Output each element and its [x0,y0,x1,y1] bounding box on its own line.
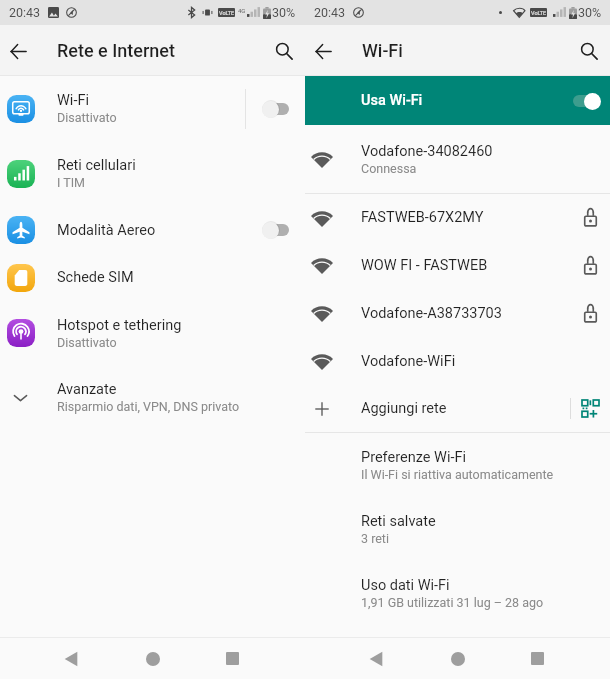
button[interactable]: Vodafone-34082460 [305,125,610,193]
button[interactable]: Back [50,638,91,679]
button[interactable]: Scan QR code [571,385,610,432]
button[interactable]: Avanzate [0,365,305,429]
staticText: Reti salvate [361,513,436,530]
button[interactable]: Vodafone-WiFi [305,337,610,385]
staticText: Modalità Aereo [57,222,156,239]
button[interactable]: Home [132,638,173,679]
staticText: VoLTE [219,10,235,16]
button[interactable]: Modalità Aereo [0,206,305,254]
button[interactable]: Preferenze Wi-Fi [305,433,610,497]
button[interactable]: Toggle Wi-Fi [246,76,305,141]
staticText: Risparmio dati, VPN, DNS privato [57,399,240,414]
staticText: Vodafone-A38733703 [361,305,502,322]
staticText: Disattivato [57,335,117,350]
staticText: Il Wi-Fi si riattiva automaticamente [361,467,554,482]
button[interactable]: Reti cellulari [0,141,305,206]
button[interactable]: Back [306,34,340,68]
staticText: 3 reti [361,531,390,546]
staticText: Aggiungi rete [361,400,570,417]
button[interactable]: Back [1,34,35,68]
staticText: 4G [238,7,246,14]
button[interactable]: Search [572,34,606,68]
button[interactable]: Schede SIM [0,254,305,301]
staticText: Schede SIM [57,269,134,286]
staticText: 1,91 GB utilizzati 31 lug – 28 ago [361,595,544,610]
button[interactable]: Vodafone-A38733703 [305,289,610,337]
button[interactable]: Toggle Modalità Aereo [246,206,305,254]
staticText: I TIM [57,175,86,190]
staticText: Hotspot e tethering [57,317,182,334]
button[interactable]: Reti salvate [305,497,610,561]
button[interactable]: Recent apps [212,638,253,679]
staticText: Wi-Fi [362,40,403,61]
staticText: Vodafone-34082460 [361,143,493,160]
staticText: 20:43 [9,5,41,20]
button[interactable]: Usa Wi-Fi [305,76,610,125]
button[interactable]: Search [267,34,301,68]
button[interactable]: Uso dati Wi-Fi [305,561,610,625]
button[interactable]: WOW FI - FASTWEB [305,241,610,289]
button[interactable]: Back [355,638,396,679]
staticText: Rete e Internet [57,40,175,61]
staticText: Usa Wi-Fi [361,92,563,109]
button[interactable]: Hotspot e tethering [0,301,305,365]
staticText: 20:43 [314,5,346,20]
staticText: Preferenze Wi-Fi [361,449,466,466]
button[interactable]: Aggiungi rete [305,385,610,432]
staticText: 30% [272,5,296,20]
button[interactable]: Recent apps [517,638,558,679]
staticText: WOW FI - FASTWEB [361,257,488,274]
button[interactable]: Wi-Fi [0,76,305,141]
staticText: 30% [578,5,602,20]
staticText: VoLTE [531,10,547,16]
staticText: Uso dati Wi-Fi [361,577,450,594]
staticText: Vodafone-WiFi [361,353,456,370]
button[interactable]: Toggle Wi-Fi [563,76,610,125]
staticText: Connessa [361,161,417,176]
staticText: Wi-Fi [57,92,89,109]
staticText: Reti cellulari [57,157,136,174]
staticText: Avanzate [57,381,117,398]
staticText: Disattivato [57,110,117,125]
button[interactable]: Home [437,638,478,679]
button[interactable]: FASTWEB-67X2MY [305,194,610,241]
staticText: FASTWEB-67X2MY [361,209,484,226]
